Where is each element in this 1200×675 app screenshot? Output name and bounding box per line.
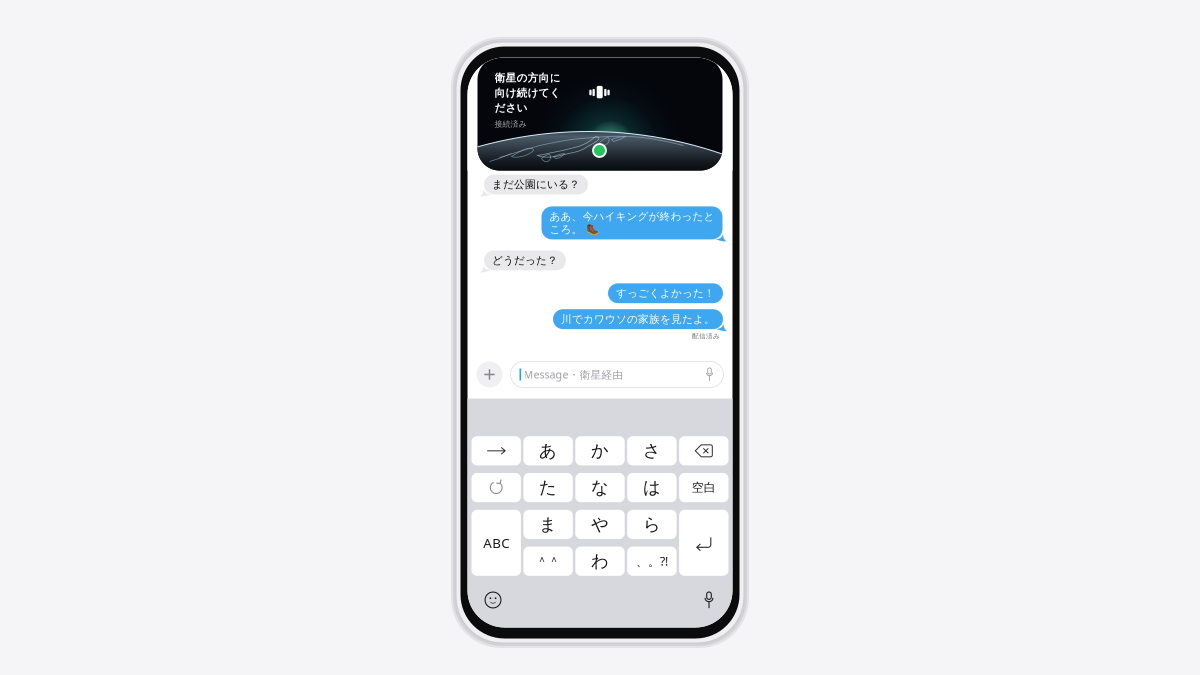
staticText: 接続済み bbox=[494, 119, 526, 129]
button[interactable]: か bbox=[575, 436, 625, 465]
staticText: どうだった？ bbox=[492, 254, 558, 267]
staticText: や bbox=[591, 514, 609, 535]
staticText: か bbox=[591, 440, 609, 461]
staticText: ABC bbox=[483, 534, 509, 552]
button[interactable]: さ bbox=[627, 436, 677, 465]
button[interactable]: Dictation bbox=[702, 591, 715, 608]
button[interactable]: 川でカワウソの家族を見たよ。 bbox=[553, 309, 723, 329]
staticText: な bbox=[591, 477, 609, 498]
button[interactable]: た bbox=[523, 473, 573, 502]
staticText: ら bbox=[643, 514, 661, 535]
staticText: た bbox=[539, 477, 557, 498]
button[interactable]: ABC bbox=[471, 510, 521, 576]
button[interactable]: どうだった？ bbox=[484, 250, 566, 270]
staticText: あ bbox=[539, 440, 557, 461]
staticText: は bbox=[643, 477, 661, 498]
button[interactable]: ああ、今ハイキングが終わったところ。 🥾 bbox=[541, 206, 723, 239]
button[interactable]: は bbox=[627, 473, 677, 502]
button[interactable]: すっごくよかった！ bbox=[608, 283, 723, 303]
button[interactable]: 空白 bbox=[679, 473, 728, 502]
button[interactable]: Next candidate bbox=[471, 436, 521, 465]
staticText: ＾＾ bbox=[536, 554, 560, 568]
button[interactable]: Delete bbox=[679, 436, 728, 465]
button[interactable]: Return bbox=[679, 510, 728, 576]
staticText: 向け続けてく bbox=[494, 86, 560, 99]
staticText: Message・衛星経由 bbox=[523, 367, 623, 382]
staticText: 配信済み bbox=[692, 332, 720, 340]
staticText: すっごくよかった！ bbox=[616, 287, 715, 300]
button[interactable]: まだ公園にいる？ bbox=[484, 174, 588, 194]
staticText: ま bbox=[539, 514, 557, 535]
staticText: 川でカワウソの家族を見たよ。 bbox=[561, 313, 715, 326]
button[interactable]: ま bbox=[523, 510, 573, 539]
button[interactable]: ＾＾ bbox=[523, 547, 573, 576]
button[interactable]: や bbox=[575, 510, 625, 539]
staticText: わ bbox=[591, 551, 609, 572]
staticText: 衛星の方向に bbox=[494, 71, 560, 84]
button[interactable]: ら bbox=[627, 510, 677, 539]
staticText: さ bbox=[643, 440, 661, 461]
button[interactable]: 、。?! bbox=[627, 547, 677, 576]
staticText: 空白 bbox=[692, 480, 716, 495]
staticText: 、。?! bbox=[636, 553, 668, 569]
staticText: まだ公園にいる？ bbox=[492, 178, 580, 191]
button[interactable]: わ bbox=[575, 547, 625, 576]
button[interactable]: Emoji keyboard bbox=[484, 591, 501, 608]
button[interactable]: Message・衛星経由 bbox=[510, 361, 723, 387]
button[interactable]: Add attachment bbox=[476, 361, 502, 387]
staticText: ああ、今ハイキングが終わったところ。 🥾 bbox=[549, 210, 714, 236]
staticText: ださい bbox=[494, 101, 527, 114]
button[interactable]: な bbox=[575, 473, 625, 502]
button[interactable]: あ bbox=[523, 436, 573, 465]
button[interactable]: Undo bbox=[471, 473, 521, 502]
